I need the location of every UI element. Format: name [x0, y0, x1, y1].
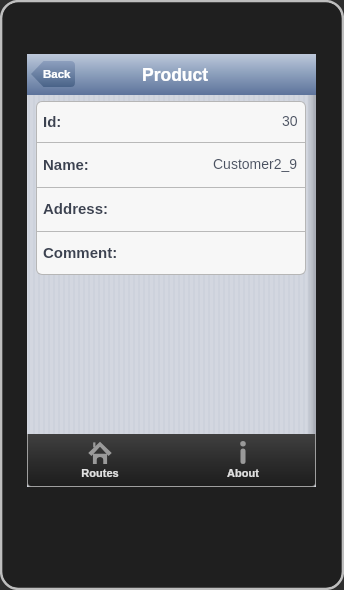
staticText: Address:: [43, 200, 109, 217]
staticText: Customer2_9: [213, 156, 298, 172]
staticText: About: [227, 467, 259, 479]
button[interactable]: Routes: [28, 434, 171, 486]
button[interactable]: Back: [31, 61, 75, 87]
button[interactable]: Comment:: [37, 232, 305, 274]
staticText: Routes: [81, 467, 119, 479]
staticText: Id:: [43, 113, 62, 130]
staticText: Product: [142, 65, 209, 85]
button[interactable]: Name:: [37, 143, 305, 187]
staticText: Comment:: [43, 244, 118, 261]
button[interactable]: Address:: [37, 188, 305, 231]
button[interactable]: About: [171, 434, 315, 486]
staticText: Back: [43, 68, 71, 81]
staticText: 30: [282, 113, 298, 129]
staticText: Name:: [43, 156, 89, 173]
button[interactable]: Id:: [37, 102, 305, 142]
